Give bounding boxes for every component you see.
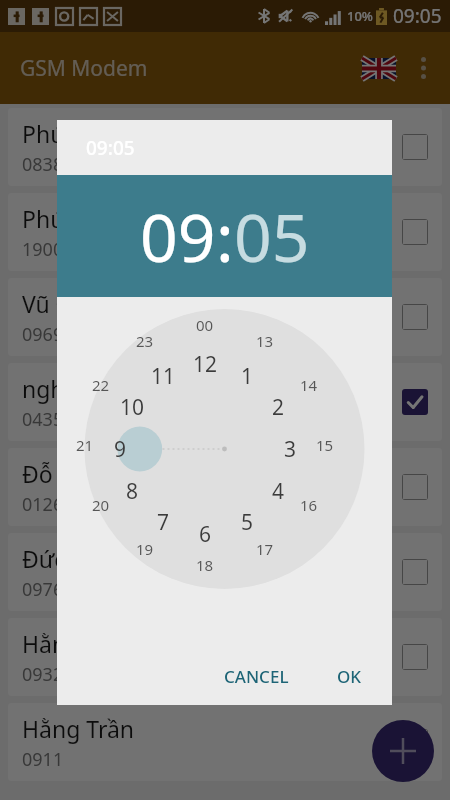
staticText: 20 [92,495,110,515]
staticText: CANCEL [224,665,289,688]
staticText: 22 [92,375,110,395]
button[interactable]: Hằng Trần [8,618,442,696]
staticText: 3 [284,435,297,464]
button[interactable]: Phúc [8,108,442,186]
button[interactable]: Add [372,720,434,782]
staticText: 09:05 [393,3,442,29]
button[interactable]: Phúc [8,193,442,271]
staticText: 1 [241,362,254,391]
staticText: 16 [300,495,318,515]
button[interactable]: Select contact [402,644,428,670]
staticText: OK [337,665,362,688]
staticText: 0126 [22,492,64,517]
button[interactable]: More options [402,47,444,89]
button[interactable]: OK [323,655,376,698]
staticText: 8 [126,477,139,506]
button[interactable]: Đức [8,533,442,611]
button[interactable]: Select contact [402,304,428,330]
staticText: GSM Modem [20,54,148,83]
staticText: 14 [300,375,318,395]
staticText: 21 [76,435,94,455]
staticText: 09:05 [86,135,135,161]
button[interactable]: Select contact [402,729,428,755]
staticText: Đức [22,543,66,574]
button[interactable]: Language [358,47,400,89]
staticText: Đỗ [22,458,53,489]
staticText: 0435 [22,407,64,432]
staticText: 0838 [22,152,64,177]
staticText: 19 [136,539,154,559]
staticText: 0976 [22,577,64,602]
button[interactable]: Select contact [402,219,428,245]
button[interactable]: Select contact [402,559,428,585]
staticText: 13 [256,331,274,351]
staticText: 15 [316,435,334,455]
staticText: 23 [136,331,154,351]
button[interactable]: Select contact [402,474,428,500]
staticText: 0932 [22,662,64,687]
staticText: 09 [140,191,216,281]
staticText: Phúc [22,118,76,149]
staticText: 5 [241,508,254,537]
staticText: 00 [196,315,214,335]
button[interactable]: ngh [8,363,442,441]
button[interactable]: CANCEL [210,655,303,698]
staticText: 4 [272,477,285,506]
staticText: 12 [193,350,218,379]
staticText: 11 [151,362,176,391]
staticText: 10 [120,393,145,422]
staticText: 6 [199,520,212,549]
staticText: 0911 [22,747,64,772]
staticText: Vũ + [22,288,69,319]
button[interactable]: Select contact [402,389,428,415]
staticText: 10% [347,7,373,25]
staticText: ngh [22,373,65,404]
staticText: 2 [272,393,285,422]
staticText: 9 [114,435,127,464]
staticText: 1900 [22,237,64,262]
staticText: 05 [234,191,310,281]
staticText: 7 [157,508,170,537]
staticText: 17 [256,539,274,559]
button[interactable]: Vũ + [8,278,442,356]
staticText: 0969 [22,322,64,347]
button[interactable]: Select contact [402,134,428,160]
button[interactable]: Đỗ [8,448,442,526]
staticText: Phúc [22,203,76,234]
staticText: 18 [196,555,214,575]
button[interactable]: Clock face, 9 selected [57,297,392,607]
staticText: : [216,191,234,281]
staticText: Hằng Trần [22,628,135,659]
staticText: Hằng Trần [22,713,135,744]
button[interactable]: Hằng Trần [8,703,442,781]
